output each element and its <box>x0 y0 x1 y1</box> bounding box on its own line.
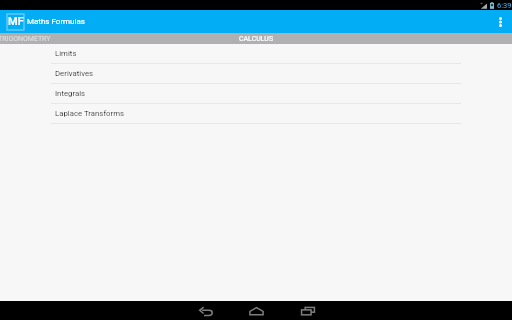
button[interactable]: Laplace Transforms <box>0 104 512 124</box>
button[interactable]: Limits <box>0 44 512 64</box>
button[interactable]: Derivatives <box>0 64 512 84</box>
button[interactable]: Back <box>180 301 231 320</box>
button[interactable]: Recent apps <box>282 301 333 320</box>
staticText: MF <box>8 15 24 28</box>
button[interactable]: TRIGONOMETRY <box>0 33 79 44</box>
staticText: Limits <box>55 49 77 58</box>
button[interactable]: CALCULUS <box>201 33 311 44</box>
staticText: Integrals <box>55 89 86 98</box>
staticText: Derivatives <box>55 69 94 78</box>
staticText: 6:39 <box>497 1 512 10</box>
staticText: Maths Formulas <box>27 17 85 26</box>
staticText: Laplace Transforms <box>55 109 125 118</box>
button[interactable]: Home <box>231 301 282 320</box>
button[interactable]: Integrals <box>0 84 512 104</box>
button[interactable]: More options <box>489 10 512 33</box>
staticText: CALCULUS <box>239 35 274 43</box>
staticText: TRIGONOMETRY <box>0 35 51 43</box>
